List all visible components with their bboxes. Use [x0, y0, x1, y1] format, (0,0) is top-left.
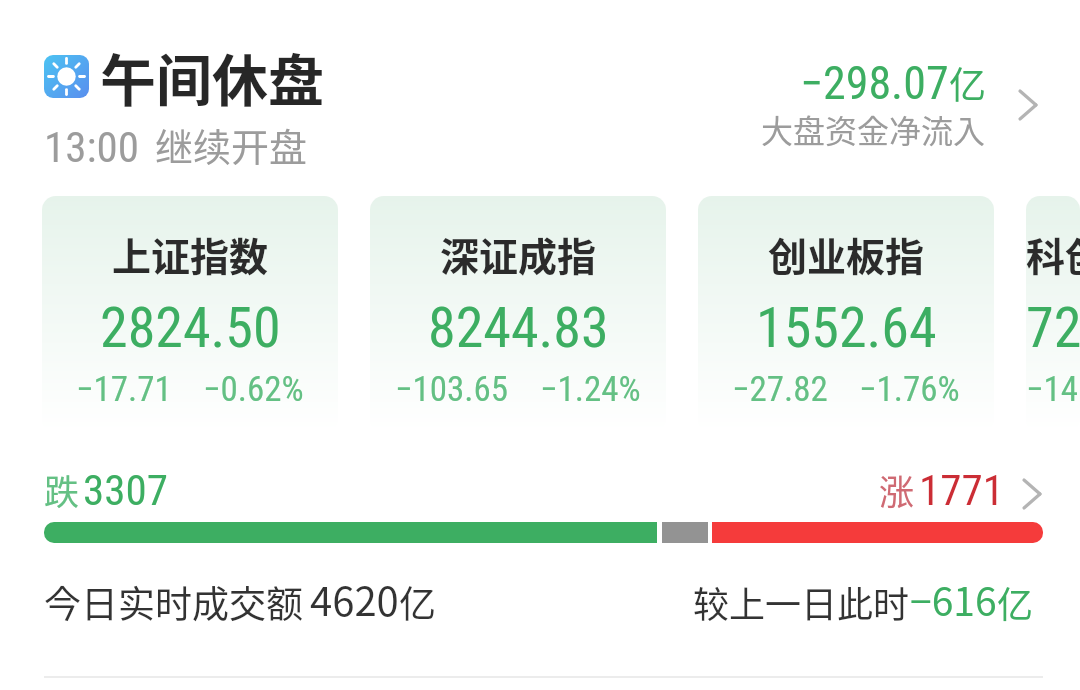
staticText: 3307 [83, 465, 168, 515]
staticText: −0.62% [203, 369, 304, 410]
staticText: 创业板指 [768, 226, 925, 282]
staticText: 继续开盘 [155, 117, 308, 172]
staticText: 8244.83 [428, 295, 609, 361]
staticText: 涨 [879, 464, 915, 515]
staticText: 2824.50 [100, 295, 281, 361]
staticText: 较上一日此时 [693, 576, 910, 628]
button[interactable]: 跌 [44, 464, 168, 515]
staticText: −17.71 [76, 369, 172, 410]
button[interactable]: 创业板指 [698, 196, 994, 432]
staticText: 科创50 [1026, 226, 1080, 282]
staticText: 1552.64 [756, 295, 937, 361]
staticText: 深证成指 [440, 226, 597, 282]
staticText: 亿 [949, 56, 986, 110]
button[interactable]: 上证指数 [42, 196, 338, 432]
staticText: 大盘资金净流入 [761, 106, 986, 152]
other: Market funds detail [1018, 89, 1038, 121]
staticText: 1771 [919, 465, 1004, 515]
staticText: −103.65 [395, 369, 509, 410]
staticText: −616 [910, 571, 997, 627]
staticText: 亿 [399, 575, 436, 629]
staticText: −1.24% [540, 369, 641, 410]
staticText: 亿 [997, 576, 1034, 628]
button[interactable]: 涨 [879, 464, 1004, 515]
staticText: 上证指数 [112, 226, 269, 282]
staticText: 午间休盘 [100, 36, 324, 117]
button[interactable]: −298.07 [761, 56, 1038, 156]
staticText: −27.82 [732, 369, 828, 410]
staticText: 13:00 [44, 122, 139, 172]
staticText: −298.07 [800, 56, 949, 110]
other: Advancers and decliners [1022, 478, 1042, 510]
staticText: 今日实时成交额 [44, 575, 303, 629]
staticText: 4620 [310, 570, 399, 628]
button[interactable]: 科创50 [1026, 196, 1080, 432]
staticText: 726.93 [1026, 295, 1080, 361]
staticText: −1.76% [859, 369, 960, 410]
staticText: −14.22 [1026, 369, 1080, 410]
button[interactable]: 深证成指 [370, 196, 666, 432]
staticText: 跌 [44, 464, 80, 515]
